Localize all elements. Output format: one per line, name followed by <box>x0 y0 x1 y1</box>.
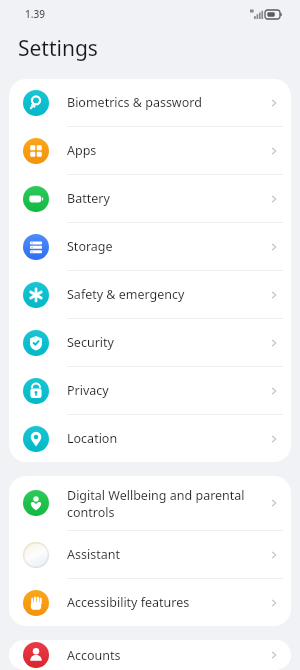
staticText: Accessibility features <box>67 594 259 611</box>
button[interactable]: Privacy <box>9 367 291 414</box>
staticText: Storage <box>67 238 259 255</box>
button[interactable]: Accessibility features <box>9 579 291 626</box>
staticText: Security <box>67 334 259 351</box>
button[interactable]: Battery <box>9 175 291 222</box>
button[interactable]: Storage <box>9 223 291 270</box>
staticText: Battery <box>67 190 259 207</box>
staticText: Privacy <box>67 382 259 399</box>
staticText: Assistant <box>67 546 259 563</box>
staticText: Safety & emergency <box>67 286 259 303</box>
staticText: 1.39 <box>25 7 45 21</box>
button[interactable]: Digital Wellbeing and parental controls <box>9 476 291 530</box>
button[interactable]: Accounts <box>9 640 291 670</box>
staticText: Digital Wellbeing and parental controls <box>67 487 259 520</box>
button[interactable]: Apps <box>9 127 291 174</box>
staticText: Apps <box>67 142 259 159</box>
button[interactable]: Location <box>9 415 291 462</box>
button[interactable]: Assistant <box>9 531 291 578</box>
button[interactable]: Safety & emergency <box>9 271 291 318</box>
button[interactable]: Security <box>9 319 291 366</box>
staticText: Accounts <box>67 647 259 664</box>
staticText: Biometrics & password <box>67 94 259 111</box>
staticText: Settings <box>18 34 98 63</box>
button[interactable]: Biometrics & password <box>9 79 291 126</box>
staticText: Location <box>67 430 259 447</box>
